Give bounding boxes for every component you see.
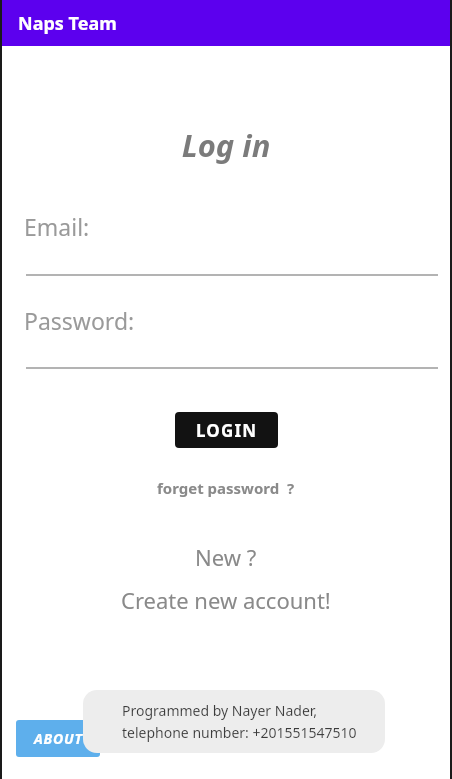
staticText: forget password ? xyxy=(157,478,295,498)
staticText: Programmed by Nayer Nader, xyxy=(122,701,318,720)
button[interactable]: forget password ? xyxy=(0,478,452,498)
button[interactable]: ABOUT xyxy=(16,720,100,757)
staticText: Email: xyxy=(24,211,90,242)
staticText: Password: xyxy=(24,305,135,336)
staticText: Create new account! xyxy=(121,585,331,615)
button[interactable]: LOGIN xyxy=(175,412,278,448)
staticText: ABOUT xyxy=(34,729,83,748)
staticText: Naps Team xyxy=(18,11,117,36)
button[interactable]: New ? xyxy=(0,542,452,615)
staticText: Log in xyxy=(0,124,452,166)
staticText: New ? xyxy=(195,542,257,572)
staticText: telephone number: +201551547510 xyxy=(122,723,357,742)
staticText: LOGIN xyxy=(196,419,258,442)
